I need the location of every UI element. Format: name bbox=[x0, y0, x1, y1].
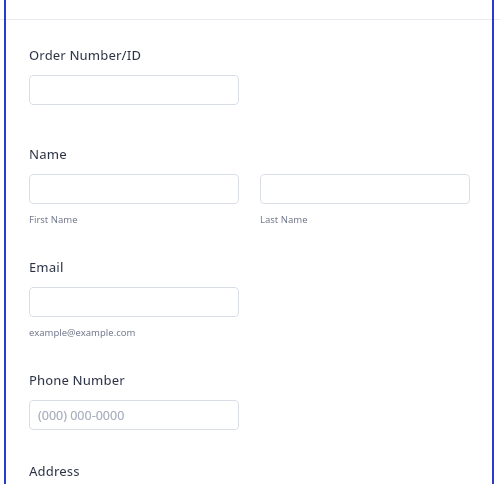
button[interactable] bbox=[29, 75, 239, 105]
button[interactable]: (000) 000-0000 bbox=[29, 400, 239, 430]
staticText: Email bbox=[29, 258, 64, 276]
staticText: (000) 000-0000 bbox=[38, 407, 125, 424]
staticText: Last Name bbox=[260, 213, 308, 226]
staticText: Address bbox=[29, 462, 80, 480]
staticText: First Name bbox=[29, 213, 78, 226]
staticText: example@example.com bbox=[29, 326, 136, 339]
staticText: Name bbox=[29, 145, 67, 163]
button[interactable] bbox=[29, 174, 239, 204]
staticText: Order Number/ID bbox=[29, 46, 142, 64]
button[interactable] bbox=[29, 287, 239, 317]
button[interactable] bbox=[260, 174, 470, 204]
staticText: Phone Number bbox=[29, 371, 125, 389]
